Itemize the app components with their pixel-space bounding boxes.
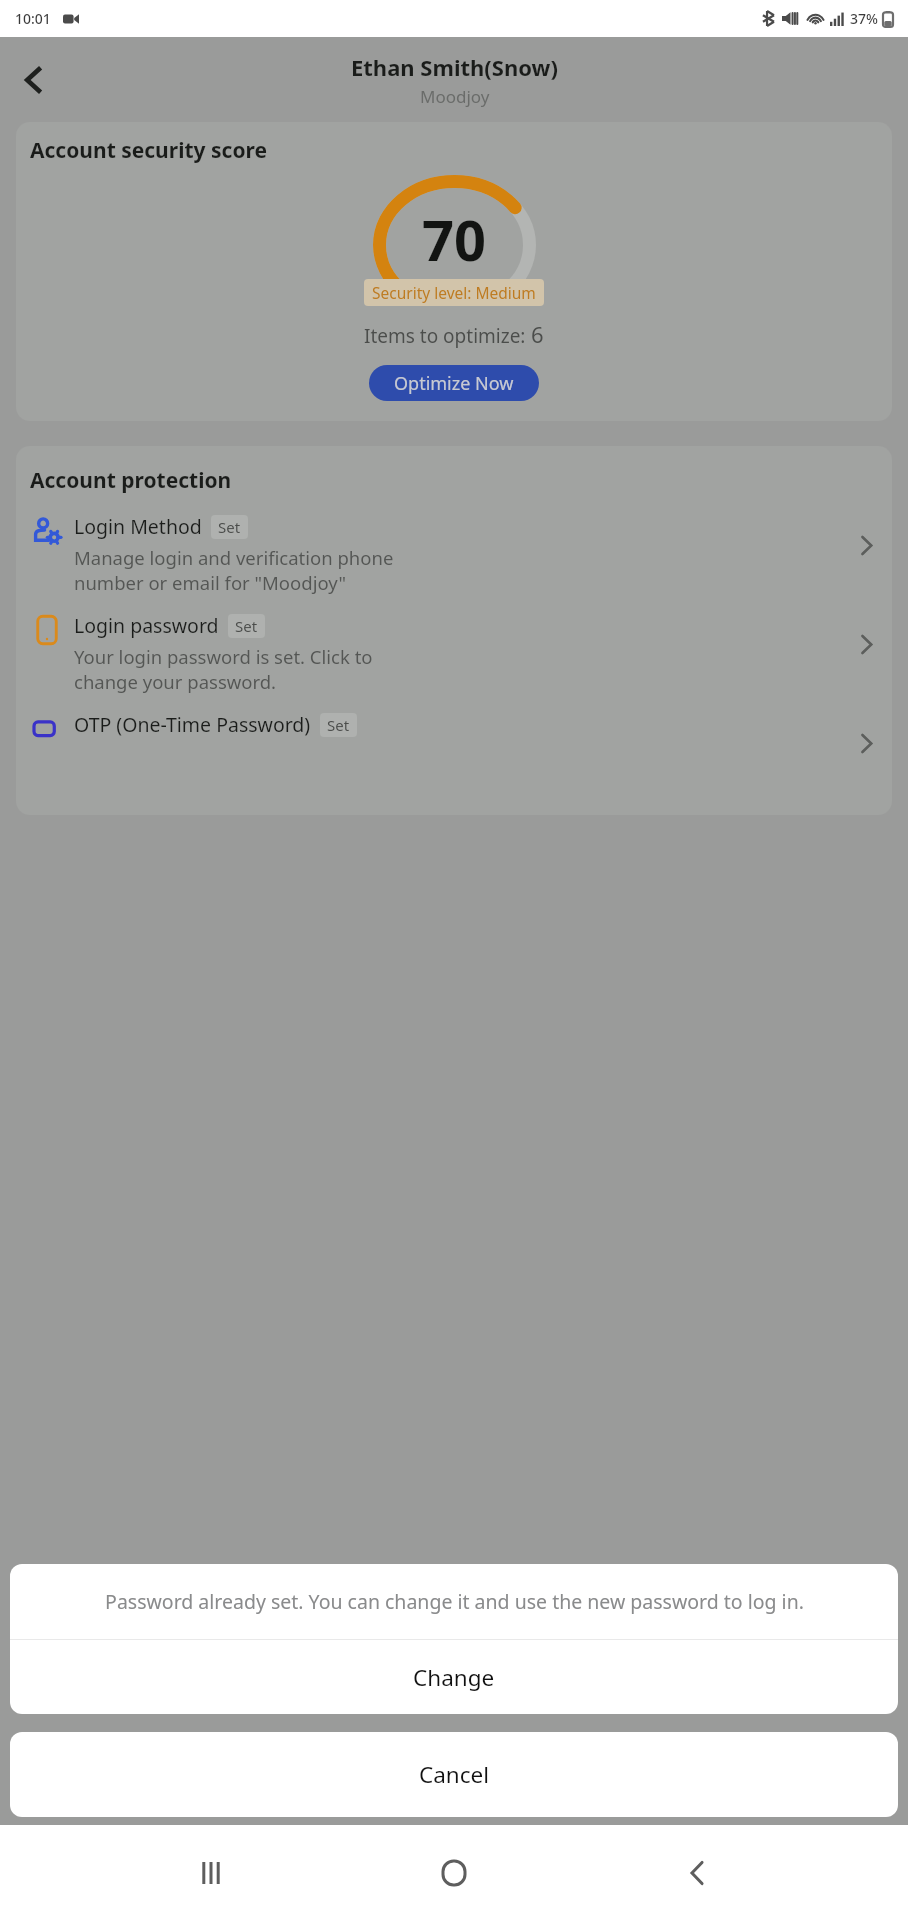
staticText: 10:01 <box>15 9 51 28</box>
button[interactable]: Back <box>6 51 64 109</box>
button[interactable]: Recent apps <box>179 1841 243 1905</box>
button[interactable]: Optimize Now <box>369 365 539 401</box>
staticText: Login Method <box>74 513 202 540</box>
staticText: Account protection <box>30 466 232 495</box>
staticText: Change <box>413 1662 495 1693</box>
staticText: Set <box>327 715 350 735</box>
staticText: Set <box>235 616 258 636</box>
button[interactable]: OTP (One-Time Password) <box>16 711 892 755</box>
staticText: Your login password is set. Click to cha… <box>74 644 373 695</box>
staticText: Account security score <box>30 136 268 165</box>
button[interactable]: Cancel <box>10 1732 898 1817</box>
button[interactable]: Change <box>10 1640 898 1714</box>
staticText: Moodjoy <box>420 85 490 108</box>
staticText: Cancel <box>419 1759 490 1790</box>
staticText: Security level: Medium <box>372 282 536 303</box>
staticText: Optimize Now <box>394 371 514 396</box>
button[interactable]: Back <box>665 1841 729 1905</box>
staticText: Manage login and verification phone numb… <box>74 545 394 596</box>
staticText: Login password <box>74 612 219 639</box>
button[interactable]: Login password <box>16 612 892 695</box>
staticText: Items to optimize: <box>364 323 531 349</box>
staticText: OTP (One-Time Password) <box>74 711 311 738</box>
staticText: Ethan Smith(Snow) <box>351 52 558 82</box>
staticText: Set <box>218 517 241 537</box>
button[interactable]: Home <box>422 1841 486 1905</box>
button[interactable]: Login Method <box>16 513 892 596</box>
staticText: 70 <box>422 201 487 277</box>
staticText: 6 <box>531 319 544 349</box>
staticText: Password already set. You can change it … <box>105 1588 804 1615</box>
staticText: 37% <box>850 9 878 28</box>
